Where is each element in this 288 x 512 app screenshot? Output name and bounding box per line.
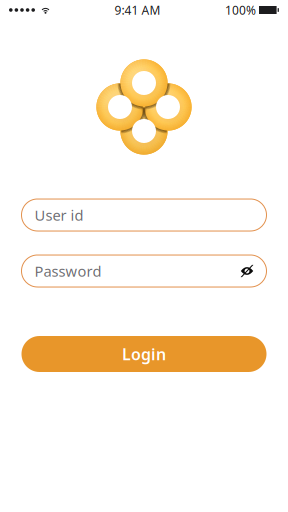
button[interactable]: Login [21, 336, 266, 372]
button[interactable]: User id [21, 199, 266, 231]
staticText: 100% [225, 2, 256, 18]
button[interactable]: Password [21, 255, 266, 287]
staticText: User id [34, 205, 83, 225]
staticText: Password [34, 261, 101, 281]
staticText: 9:41 AM [114, 2, 160, 18]
staticText: Login [122, 343, 166, 365]
